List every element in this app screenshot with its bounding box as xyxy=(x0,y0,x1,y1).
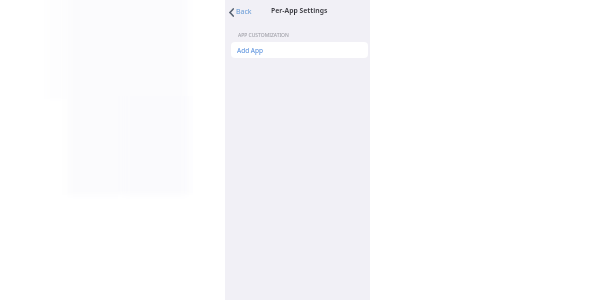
staticText: Add App xyxy=(237,46,263,55)
button[interactable]: Add App xyxy=(231,42,368,58)
staticText: APP CUSTOMIZATION xyxy=(238,32,289,39)
button[interactable]: Back xyxy=(228,5,253,19)
staticText: Per-App Settings xyxy=(271,6,328,15)
other: Back xyxy=(229,8,234,17)
staticText: Back xyxy=(236,7,252,17)
